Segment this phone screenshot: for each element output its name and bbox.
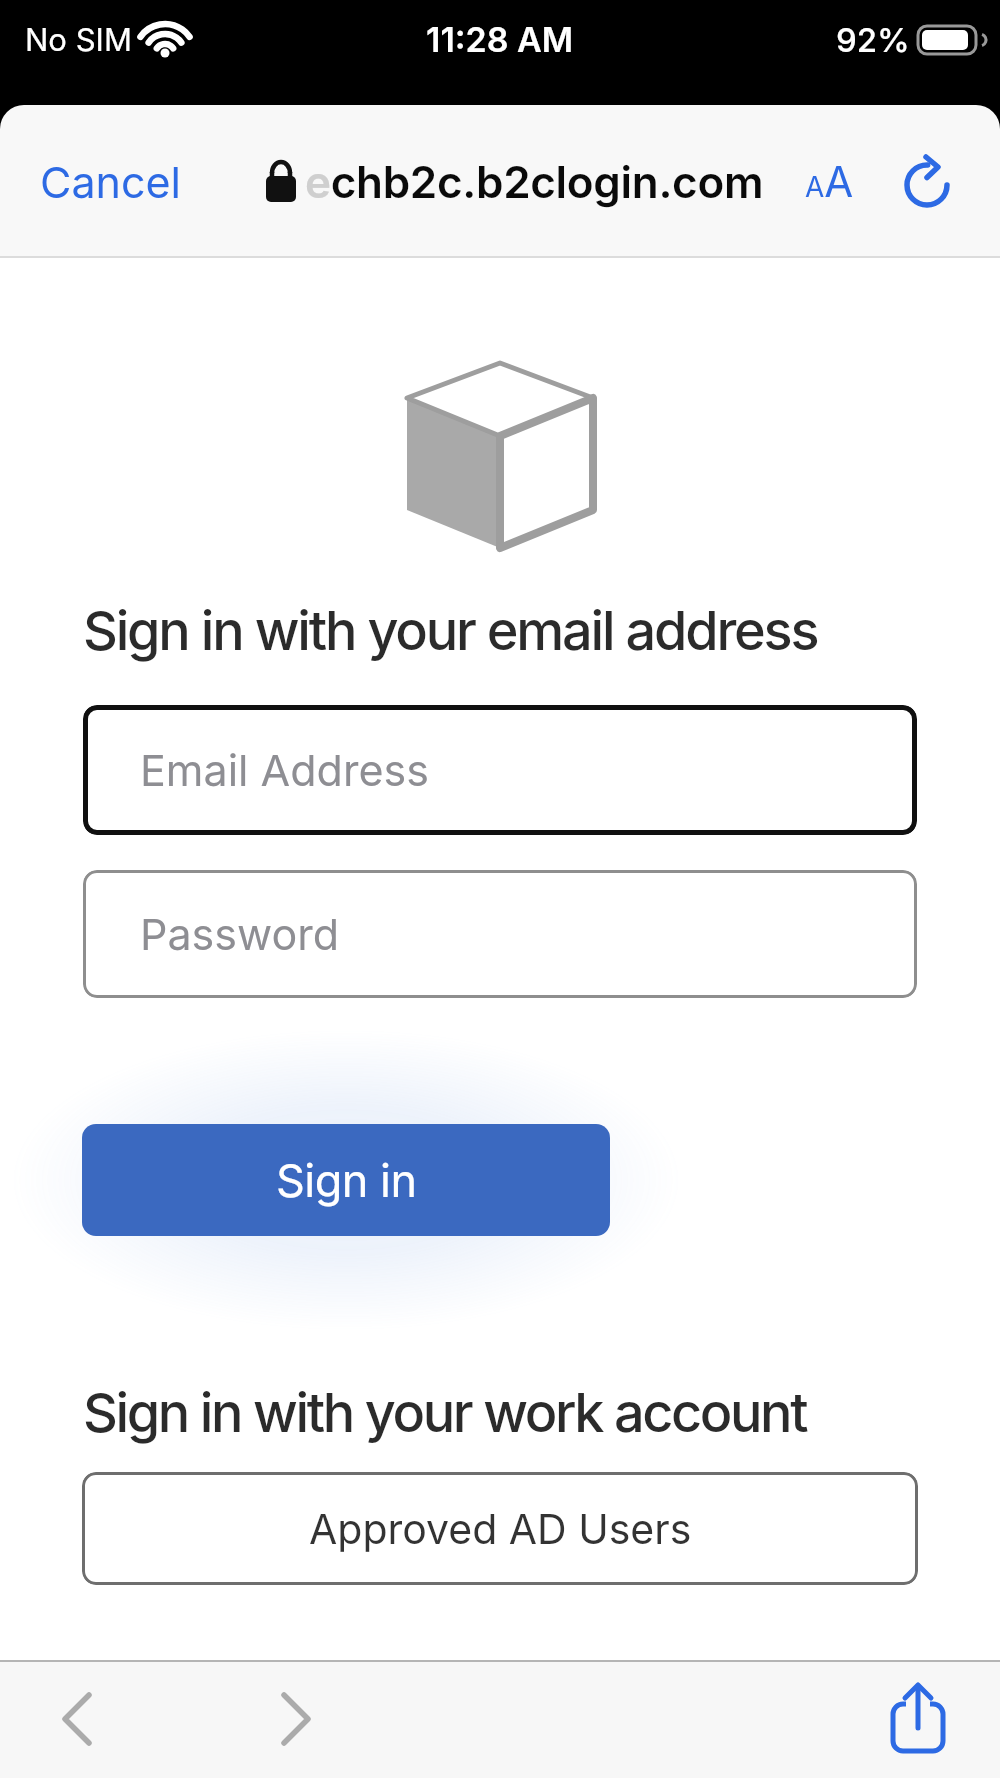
staticText: No SIM	[25, 21, 132, 59]
staticText: echb2c.b2clogin.com	[305, 155, 764, 208]
button[interactable]	[892, 1684, 944, 1754]
button[interactable]: Approved AD Users	[82, 1472, 918, 1585]
staticText: 11:28 AM	[426, 19, 574, 60]
button[interactable]: Sign in	[82, 1124, 610, 1236]
button[interactable]	[902, 157, 952, 207]
button[interactable]	[274, 1691, 318, 1747]
button[interactable]: Cancel	[24, 146, 198, 218]
staticText: Cancel	[40, 156, 182, 208]
button[interactable]	[55, 1691, 99, 1747]
staticText: 92%	[836, 20, 910, 60]
button[interactable]: Password	[83, 870, 917, 998]
staticText: AA	[805, 156, 854, 207]
staticText: Sign in with your work account	[83, 1380, 807, 1445]
staticText: Email Address	[140, 744, 429, 796]
staticText: Password	[140, 908, 340, 960]
button[interactable]: AA	[805, 156, 854, 207]
button[interactable]: Email Address	[83, 705, 917, 835]
button[interactable]: echb2c.b2clogin.com	[265, 155, 764, 208]
staticText: Sign in with your email address	[83, 598, 818, 663]
staticText: Approved AD Users	[309, 1504, 692, 1554]
staticText: Sign in	[276, 1153, 417, 1207]
